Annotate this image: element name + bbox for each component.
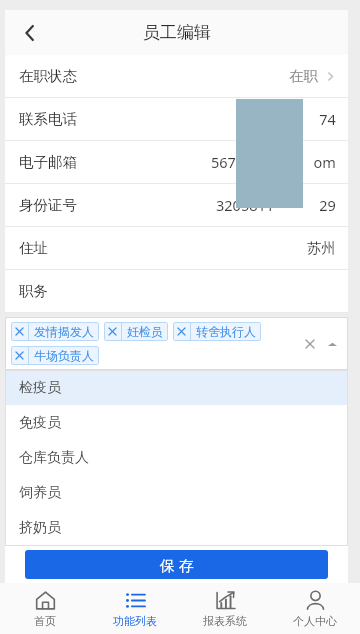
button[interactable]: Clear — [302, 336, 318, 352]
button[interactable]: 牛场负责人 — [11, 346, 99, 365]
staticText: 身份证号 — [19, 196, 77, 214]
button[interactable]: Collapse — [324, 336, 340, 352]
button[interactable]: 饲养员 — [5, 475, 348, 510]
button[interactable]: 检疫员 — [5, 370, 348, 405]
button[interactable]: 仓库负责人 — [5, 440, 348, 475]
button[interactable]: 功能列表 — [90, 583, 180, 634]
staticText: 在职 — [289, 67, 318, 85]
staticText: 3205811 29 — [216, 195, 336, 215]
button[interactable]: 联系电话 — [5, 98, 348, 140]
staticText: 苏州 — [307, 239, 336, 257]
staticText: 住址 — [19, 239, 48, 257]
button[interactable]: Back — [9, 12, 51, 54]
staticText: 转舍执行人 — [196, 324, 256, 339]
staticText: 职务 — [19, 282, 48, 300]
button[interactable]: 发情揭发人 — [11, 322, 99, 341]
staticText: 电子邮箱 — [19, 153, 77, 171]
button[interactable]: 报表系统 — [180, 583, 270, 634]
button[interactable]: 电子邮箱 — [5, 141, 348, 183]
staticText: 567888 om — [211, 152, 336, 172]
button[interactable]: 免疫员 — [5, 405, 348, 440]
staticText: 个人中心 — [293, 614, 337, 628]
staticText: 功能列表 — [113, 614, 157, 628]
button[interactable]: 住址 — [5, 227, 348, 269]
button[interactable]: 挤奶员 — [5, 510, 348, 545]
staticText: 在职状态 — [19, 67, 77, 85]
button[interactable]: 首页 — [0, 583, 90, 634]
button[interactable]: 职务 — [5, 270, 348, 312]
staticText: 联系电话 — [19, 110, 77, 128]
button[interactable]: 妊检员 — [104, 322, 168, 341]
staticText: 首页 — [34, 614, 56, 628]
staticText: 免疫员 — [19, 414, 61, 432]
staticText: 5 74 — [243, 109, 336, 129]
staticText: 员工编辑 — [143, 22, 211, 43]
button[interactable]: 身份证号 — [5, 184, 348, 226]
staticText: 挤奶员 — [19, 519, 61, 537]
staticText: 牛场负责人 — [34, 348, 94, 363]
button[interactable]: 个人中心 — [270, 583, 360, 634]
button[interactable]: 转舍执行人 — [173, 322, 261, 341]
staticText: 报表系统 — [203, 614, 247, 628]
staticText: 检疫员 — [19, 379, 61, 397]
staticText: 保 存 — [160, 555, 194, 575]
staticText: 妊检员 — [127, 324, 163, 339]
button[interactable]: 保 存 — [25, 550, 328, 579]
staticText: 仓库负责人 — [19, 449, 89, 467]
staticText: 发情揭发人 — [34, 324, 94, 339]
staticText: 饲养员 — [19, 484, 61, 502]
button[interactable]: 在职状态 — [5, 55, 348, 97]
